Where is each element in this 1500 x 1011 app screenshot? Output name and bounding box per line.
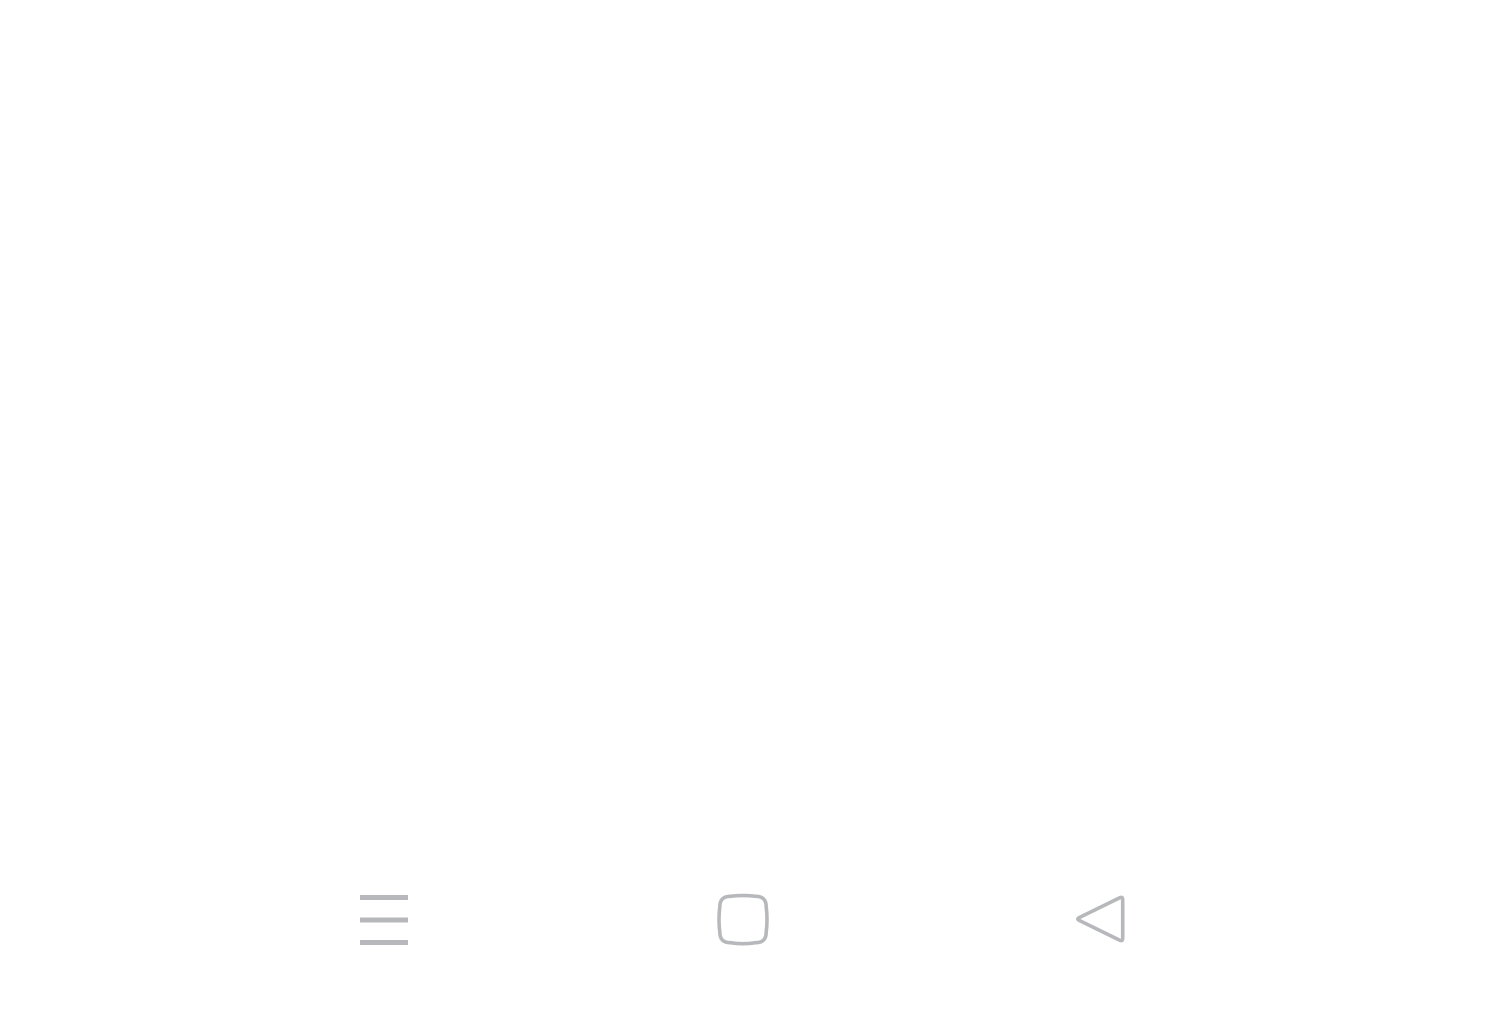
button[interactable]: Back (1019, 853, 1179, 985)
button[interactable]: Home (663, 854, 823, 986)
button[interactable]: Recent apps (304, 854, 464, 986)
